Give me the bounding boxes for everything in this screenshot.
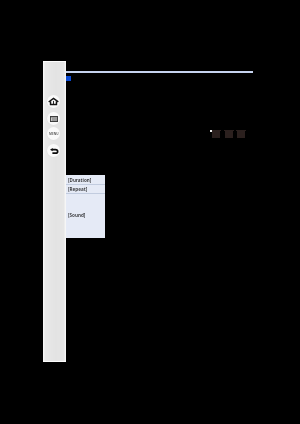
button[interactable]: [Sound] xyxy=(62,194,105,236)
staticText: [Repeat] xyxy=(68,186,88,192)
button[interactable]: Back xyxy=(47,144,60,157)
button[interactable]: [Repeat] xyxy=(62,185,105,193)
button[interactable]: Home xyxy=(47,95,60,108)
button[interactable]: [Duration] xyxy=(62,175,105,184)
button[interactable]: Menu xyxy=(47,127,60,140)
button[interactable]: Display xyxy=(47,112,60,125)
staticText: [Sound] xyxy=(68,212,86,218)
staticText: MENU xyxy=(49,132,59,136)
staticText: [Duration] xyxy=(68,177,92,183)
